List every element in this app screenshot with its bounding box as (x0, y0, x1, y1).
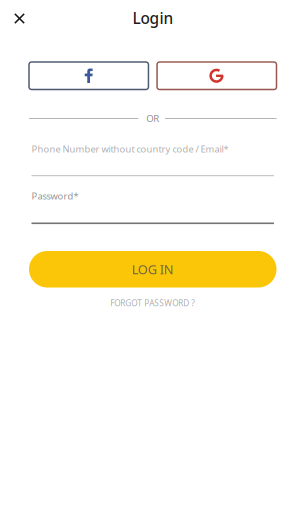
staticText: Password* (31, 190, 78, 202)
button[interactable]: Continue with Facebook (29, 62, 148, 89)
staticText: OR (146, 112, 159, 125)
staticText: LOG IN (132, 260, 174, 278)
staticText: Login (132, 7, 173, 29)
button[interactable]: LOG IN (29, 251, 276, 287)
button[interactable]: Close (3, 2, 35, 34)
staticText: Phone Number without country code / Emai… (31, 143, 228, 155)
button[interactable]: FORGOT PASSWORD ? (29, 296, 276, 310)
staticText: FORGOT PASSWORD ? (110, 297, 195, 309)
button[interactable]: Continue with Google (157, 62, 277, 89)
